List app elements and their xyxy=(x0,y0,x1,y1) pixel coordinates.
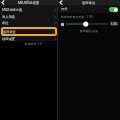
button[interactable]: Back xyxy=(58,0,64,5)
staticText: 进入等级 xyxy=(2,15,15,19)
button[interactable]: MIUI系统方案 xyxy=(0,6,57,13)
staticText: MIUI系统方案 xyxy=(2,8,23,12)
button[interactable]: 速度单位 xyxy=(1,27,57,36)
staticText: 开关 xyxy=(61,7,68,11)
staticText: 速度单位 xyxy=(82,1,96,5)
staticText: 1.00 xyxy=(111,22,117,26)
button[interactable]: Back xyxy=(0,0,6,5)
button[interactable]: 1.00 xyxy=(111,22,117,26)
staticText: 单位 xyxy=(2,21,9,25)
staticText: 系统版本 1.0 xyxy=(9,42,57,46)
button[interactable]: 恢复默认设置 xyxy=(58,29,120,33)
staticText: 功能设置 xyxy=(2,37,15,41)
button[interactable]: 开关 xyxy=(58,5,120,13)
staticText: 轮胎周长修正系数：1.00 xyxy=(61,15,93,19)
staticText: 速度单位 xyxy=(3,30,16,34)
button[interactable]: 进入等级 xyxy=(0,13,57,20)
staticText: MIUI系统设置 xyxy=(18,0,39,5)
button[interactable]: 功能设置 xyxy=(0,37,57,41)
button[interactable]: 单位 xyxy=(0,20,57,26)
button[interactable] xyxy=(66,21,108,27)
button[interactable]: Toggle speed unit xyxy=(109,7,118,12)
button[interactable]: Decrease xyxy=(61,23,64,26)
